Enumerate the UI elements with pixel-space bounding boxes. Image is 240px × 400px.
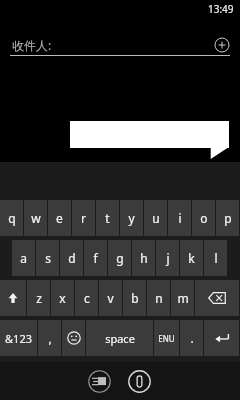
staticText: space — [105, 331, 135, 346]
staticText: e — [56, 210, 63, 226]
button[interactable]: t — [96, 200, 119, 236]
staticText: a — [20, 250, 27, 266]
staticText: x — [59, 290, 66, 306]
button[interactable]: w — [24, 200, 47, 236]
staticText: . — [190, 330, 194, 346]
button[interactable]: p — [216, 200, 239, 236]
staticText: q — [8, 210, 16, 226]
button[interactable]: ENU — [154, 320, 179, 356]
button[interactable]: y — [120, 200, 143, 236]
button[interactable]: Add recipient — [214, 37, 230, 53]
staticText: s — [45, 250, 51, 266]
button[interactable]: b — [123, 280, 146, 316]
staticText: y — [128, 210, 135, 226]
button[interactable]: l — [204, 240, 227, 276]
button[interactable]: s — [36, 240, 59, 276]
button[interactable]: r — [72, 200, 95, 236]
staticText: z — [36, 290, 42, 306]
button[interactable] — [0, 280, 26, 316]
button[interactable]: Send message — [85, 367, 113, 395]
button[interactable]: q — [0, 200, 23, 236]
staticText: v — [107, 290, 114, 306]
button[interactable]: n — [147, 280, 170, 316]
button[interactable] — [70, 121, 229, 159]
staticText: r — [81, 210, 86, 226]
staticText: , — [48, 330, 52, 346]
staticText: m — [177, 290, 189, 306]
button[interactable]: z — [27, 280, 50, 316]
staticText: k — [188, 250, 195, 266]
staticText: b — [131, 290, 139, 306]
button[interactable]: g — [108, 240, 131, 276]
button[interactable]: h — [132, 240, 155, 276]
staticText: f — [93, 250, 98, 266]
button[interactable] — [204, 320, 239, 356]
button[interactable]: i — [168, 200, 191, 236]
button[interactable]: u — [144, 200, 167, 236]
staticText: &123 — [5, 331, 32, 346]
staticText: i — [178, 210, 182, 226]
staticText: t — [105, 210, 110, 226]
staticText: c — [84, 290, 90, 306]
button[interactable]: v — [99, 280, 122, 316]
button[interactable]: k — [180, 240, 203, 276]
button[interactable]: e — [48, 200, 71, 236]
staticText: 收件人: — [12, 37, 52, 53]
button[interactable] — [195, 280, 239, 316]
button[interactable]: j — [156, 240, 179, 276]
staticText: n — [155, 290, 163, 306]
button[interactable]: 收件人: — [0, 32, 240, 58]
button[interactable]: space — [86, 320, 153, 356]
button[interactable]: Attach — [125, 367, 153, 395]
button[interactable]: , — [38, 320, 61, 356]
button[interactable]: &123 — [0, 320, 37, 356]
staticText: 13:49 — [208, 2, 234, 16]
button[interactable]: . — [180, 320, 203, 356]
button[interactable]: x — [51, 280, 74, 316]
button[interactable]: d — [60, 240, 83, 276]
staticText: g — [116, 250, 124, 266]
staticText: l — [214, 250, 218, 266]
staticText: p — [224, 210, 232, 226]
button[interactable]: c — [75, 280, 98, 316]
staticText: o — [200, 210, 208, 226]
staticText: j — [166, 250, 170, 266]
staticText: d — [68, 250, 76, 266]
button[interactable]: f — [84, 240, 107, 276]
button[interactable]: o — [192, 200, 215, 236]
staticText: u — [152, 210, 160, 226]
button[interactable] — [62, 320, 85, 356]
button[interactable]: a — [12, 240, 35, 276]
button[interactable]: m — [171, 280, 194, 316]
staticText: w — [31, 210, 41, 226]
staticText: ENU — [158, 333, 175, 344]
staticText: h — [140, 250, 148, 266]
